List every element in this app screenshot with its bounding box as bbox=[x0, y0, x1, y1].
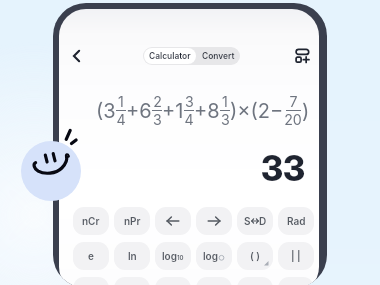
staticText: S bbox=[244, 215, 251, 227]
staticText: Convert bbox=[202, 51, 235, 61]
staticText: +8 bbox=[194, 99, 220, 123]
staticText: log bbox=[203, 250, 218, 262]
staticText: 2 bbox=[153, 93, 162, 110]
button[interactable]: Rad bbox=[278, 207, 314, 235]
staticText: 3 bbox=[185, 93, 194, 110]
button[interactable]: Parentheses bbox=[237, 242, 273, 270]
staticText: 4 bbox=[184, 111, 194, 128]
button[interactable]: nPr bbox=[114, 207, 150, 235]
staticText: Rad bbox=[287, 215, 306, 227]
staticText: 10 bbox=[177, 254, 184, 261]
staticText: e bbox=[88, 250, 94, 262]
button[interactable]: cos bbox=[114, 277, 150, 285]
staticText: 33 bbox=[261, 147, 305, 189]
button[interactable]: Absolute value bbox=[278, 242, 314, 270]
button[interactable]: nCr bbox=[73, 207, 109, 235]
staticText: 1 bbox=[222, 93, 228, 110]
button[interactable]: Back bbox=[63, 42, 91, 70]
staticText: 3 bbox=[153, 111, 162, 128]
staticText: D bbox=[259, 215, 267, 227]
staticText: ln bbox=[128, 250, 137, 262]
button[interactable]: Move right bbox=[196, 207, 232, 235]
staticText: nCr bbox=[82, 215, 100, 227]
button[interactable]: sin bbox=[73, 277, 109, 285]
button[interactable]: Calculator bbox=[144, 48, 196, 64]
button[interactable]: S to D bbox=[237, 207, 273, 235]
button[interactable]: ln bbox=[114, 242, 150, 270]
button[interactable]: Convert bbox=[197, 48, 239, 64]
button[interactable]: power bbox=[196, 277, 232, 285]
staticText: 1 bbox=[118, 93, 124, 110]
staticText: 3 bbox=[221, 111, 230, 128]
staticText: 7 bbox=[289, 93, 298, 110]
staticText: +6 bbox=[126, 99, 152, 123]
staticText: | | bbox=[291, 250, 301, 262]
button[interactable]: tan bbox=[155, 277, 191, 285]
staticText: nPr bbox=[124, 215, 141, 227]
button[interactable]: pi bbox=[278, 277, 314, 285]
button[interactable]: Assistant bbox=[21, 141, 81, 201]
button[interactable]: Move left bbox=[155, 207, 191, 235]
button[interactable]: log base n bbox=[196, 242, 232, 270]
button[interactable]: square root bbox=[237, 277, 273, 285]
staticText: Calculator bbox=[149, 51, 191, 61]
staticText: (3 bbox=[96, 99, 116, 123]
button[interactable]: log base 10 bbox=[155, 242, 191, 270]
staticText: ) bbox=[302, 99, 310, 123]
staticText: ( ) bbox=[250, 250, 260, 262]
staticText: )×(2− bbox=[230, 99, 284, 123]
staticText: 20 bbox=[284, 111, 302, 128]
staticText: log bbox=[162, 250, 177, 262]
staticText: +1 bbox=[162, 99, 184, 123]
button[interactable]: e bbox=[73, 242, 109, 270]
button[interactable]: New calculation bbox=[289, 41, 317, 69]
staticText: 4 bbox=[116, 111, 126, 128]
